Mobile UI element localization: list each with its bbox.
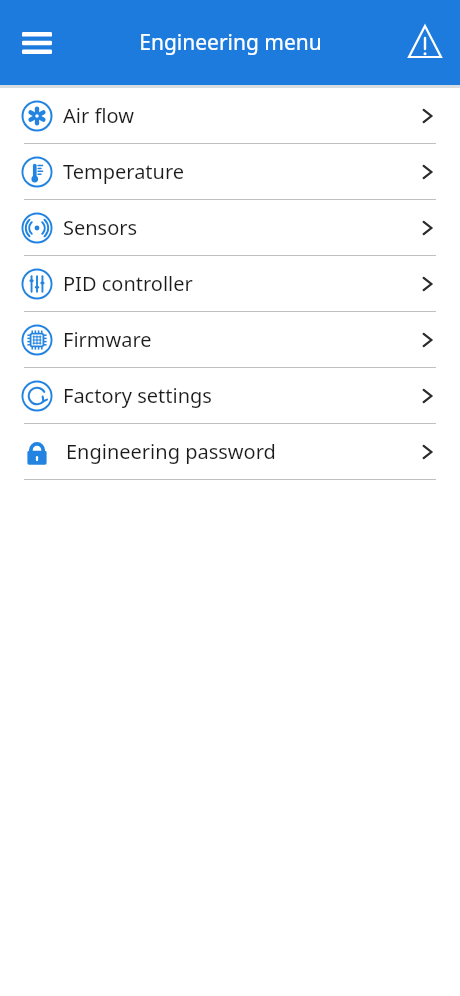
button[interactable]: Warnings	[398, 16, 452, 70]
button[interactable]: Engineering password	[0, 424, 460, 479]
staticText: Sensors	[63, 214, 138, 241]
button[interactable]: PID controller	[0, 256, 460, 311]
staticText: Temperature	[63, 158, 185, 185]
staticText: Engineering password	[66, 438, 276, 465]
staticText: PID controller	[63, 270, 193, 297]
button[interactable]: Open navigation menu	[10, 16, 64, 70]
button[interactable]: Temperature	[0, 144, 460, 199]
staticText: Air flow	[63, 102, 134, 129]
staticText: Engineering menu	[139, 28, 322, 57]
staticText: Firmware	[63, 326, 152, 353]
button[interactable]: Firmware	[0, 312, 460, 367]
button[interactable]: Sensors	[0, 200, 460, 255]
staticText: Factory settings	[63, 382, 212, 409]
button[interactable]: Air flow	[0, 88, 460, 143]
button[interactable]: Factory settings	[0, 368, 460, 423]
